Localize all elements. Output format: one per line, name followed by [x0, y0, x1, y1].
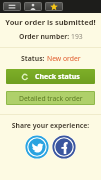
staticText: Order number:: [19, 32, 71, 41]
staticText: 193: [71, 32, 83, 41]
button[interactable]: Check status: [6, 69, 95, 84]
button[interactable]: Menu: [3, 2, 21, 11]
button[interactable]: Account: [24, 2, 42, 11]
button[interactable]: Share on Twitter: [25, 135, 49, 159]
button[interactable]: Favourites: [45, 2, 63, 11]
staticText: Check status: [35, 72, 80, 82]
button[interactable]: Detailed track order: [6, 91, 95, 105]
staticText: Detailed track order: [19, 94, 83, 103]
button[interactable]: Share on Facebook: [52, 135, 76, 159]
staticText: Share your experience:: [0, 121, 101, 130]
staticText: Your order is submitted!: [0, 17, 101, 27]
staticText: Status:: [21, 54, 47, 63]
staticText: New order: [47, 54, 81, 63]
